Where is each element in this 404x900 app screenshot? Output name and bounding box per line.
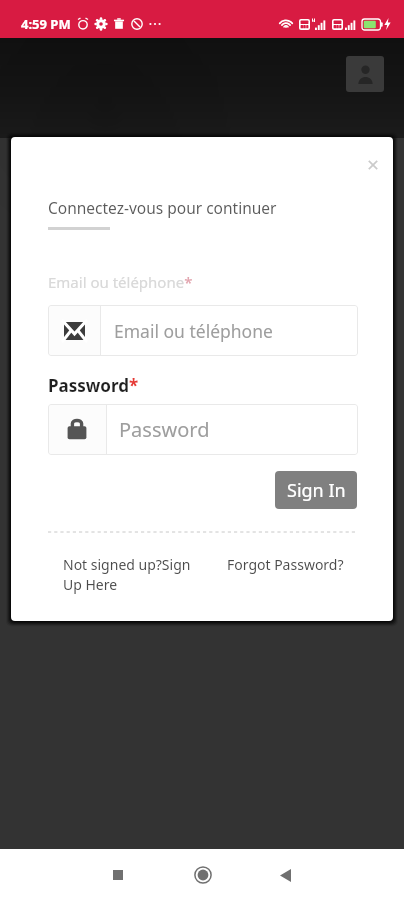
staticText: 4:59 PM: [21, 15, 71, 33]
button[interactable]: Email ou téléphone: [48, 305, 358, 356]
button[interactable]: Forgot Password?: [227, 555, 344, 574]
button[interactable]: Not signed up?Sign Up Here: [63, 555, 199, 595]
staticText: Forgot Password?: [227, 555, 344, 574]
staticText: Password: [119, 416, 210, 443]
button[interactable]: Account: [346, 56, 384, 92]
button[interactable]: Password: [48, 404, 358, 455]
staticText: Sign In: [287, 478, 346, 503]
button[interactable]: Close: [356, 148, 389, 181]
button[interactable]: Recents: [98, 855, 138, 895]
staticText: Password*: [48, 374, 139, 397]
button[interactable]: Sign In: [275, 471, 357, 509]
staticText: Not signed up?Sign Up Here: [63, 555, 199, 595]
button[interactable]: Home: [183, 855, 223, 895]
staticText: Email ou téléphone: [114, 319, 273, 343]
staticText: Connectez-vous pour continuer: [48, 197, 277, 218]
button[interactable]: Back: [265, 855, 305, 895]
staticText: Email ou téléphone*: [48, 272, 193, 292]
